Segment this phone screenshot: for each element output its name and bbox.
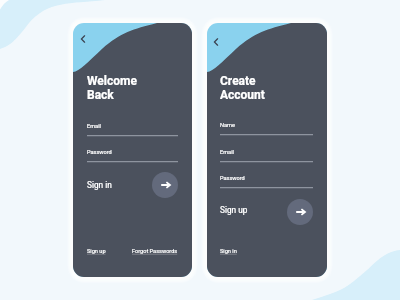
button[interactable]: Back — [209, 35, 223, 49]
staticText: Account — [220, 88, 265, 102]
button[interactable]: Name — [220, 122, 313, 137]
button[interactable]: Password — [87, 149, 178, 164]
staticText: Password — [87, 149, 112, 156]
staticText: Create — [220, 74, 256, 88]
staticText: Welcome — [87, 74, 137, 88]
button[interactable]: Sign up — [220, 205, 248, 215]
staticText: Email — [220, 149, 234, 156]
button[interactable]: Sign in — [87, 180, 112, 190]
button[interactable]: Password — [220, 175, 313, 190]
staticText: Password — [220, 175, 245, 182]
staticText: Name — [220, 122, 235, 129]
button[interactable]: Sign up — [87, 248, 106, 255]
button[interactable]: Email — [220, 149, 313, 164]
staticText: Email — [87, 123, 101, 130]
button[interactable]: Email — [87, 123, 178, 138]
button[interactable]: Sign in — [220, 248, 237, 255]
staticText: Back — [87, 88, 114, 102]
button[interactable]: Sign in — [152, 172, 178, 198]
button[interactable]: Back — [76, 32, 90, 46]
button[interactable]: Forgot Passwords — [132, 248, 178, 255]
button[interactable]: Sign up — [287, 199, 313, 225]
